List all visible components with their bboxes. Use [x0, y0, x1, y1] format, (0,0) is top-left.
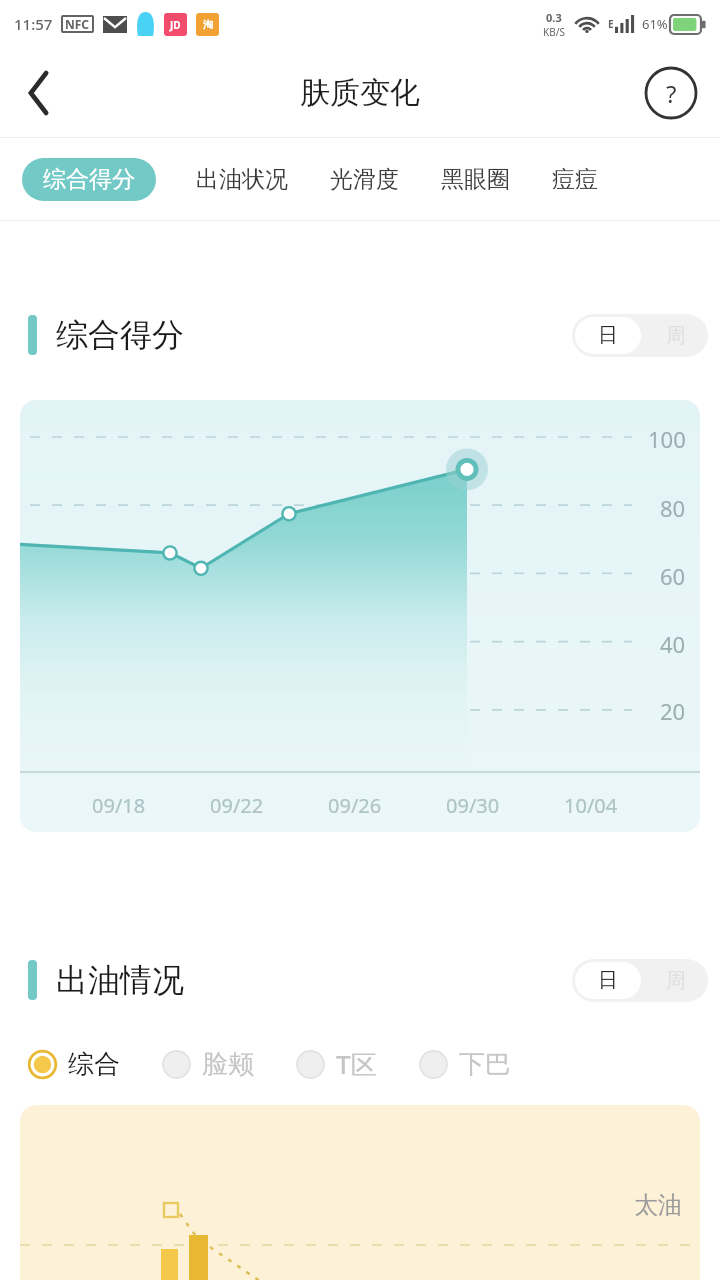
- button[interactable]: 黑眼圈: [433, 157, 518, 202]
- staticText: 光滑度: [330, 165, 399, 194]
- staticText: T区: [336, 1046, 377, 1082]
- staticText: KB/S: [543, 25, 565, 39]
- staticText: 脸颊: [202, 1048, 254, 1081]
- staticText: 100: [648, 424, 686, 454]
- button[interactable]: Help: [644, 66, 698, 120]
- staticText: JD: [170, 18, 181, 32]
- button[interactable]: 日: [572, 959, 708, 1002]
- staticText: 淘: [203, 18, 213, 31]
- button[interactable]: Back: [0, 48, 78, 138]
- staticText: ?: [666, 77, 677, 110]
- staticText: 综合得分: [56, 315, 184, 355]
- staticText: 10/04: [564, 792, 618, 819]
- button[interactable]: 痘痘: [544, 157, 606, 202]
- staticText: 61%: [642, 15, 668, 33]
- staticText: 下巴: [459, 1048, 511, 1081]
- staticText: 09/26: [328, 792, 382, 819]
- staticText: 80: [660, 493, 686, 523]
- staticText: 肤质变化: [300, 74, 420, 112]
- staticText: 11:57: [14, 14, 53, 34]
- button[interactable]: 脸颊: [162, 1043, 254, 1086]
- button[interactable]: T区: [296, 1041, 377, 1087]
- button[interactable]: 综合得分: [22, 158, 156, 201]
- staticText: 09/18: [92, 792, 146, 819]
- staticText: 综合: [68, 1048, 120, 1081]
- staticText: 20: [660, 696, 686, 726]
- button[interactable]: 综合: [28, 1043, 120, 1086]
- staticText: 周: [666, 323, 686, 348]
- button[interactable]: 日: [572, 314, 708, 357]
- staticText: 日: [598, 968, 618, 993]
- staticText: 出油情况: [56, 960, 184, 1000]
- staticText: 痘痘: [552, 165, 598, 194]
- staticText: 0.3: [546, 10, 562, 25]
- staticText: 日: [598, 323, 618, 348]
- staticText: 40: [660, 629, 686, 659]
- button[interactable]: 出油状况: [188, 157, 296, 202]
- staticText: 出油状况: [196, 165, 288, 194]
- staticText: 太油: [634, 1190, 682, 1220]
- staticText: NFC: [65, 16, 90, 32]
- staticText: 09/22: [210, 792, 264, 819]
- staticText: 09/30: [446, 792, 500, 819]
- staticText: 60: [660, 561, 686, 591]
- staticText: 综合得分: [43, 165, 135, 194]
- staticText: 周: [666, 968, 686, 993]
- staticText: E: [608, 17, 614, 31]
- button[interactable]: 光滑度: [322, 157, 407, 202]
- button[interactable]: 下巴: [419, 1043, 511, 1086]
- staticText: 黑眼圈: [441, 165, 510, 194]
